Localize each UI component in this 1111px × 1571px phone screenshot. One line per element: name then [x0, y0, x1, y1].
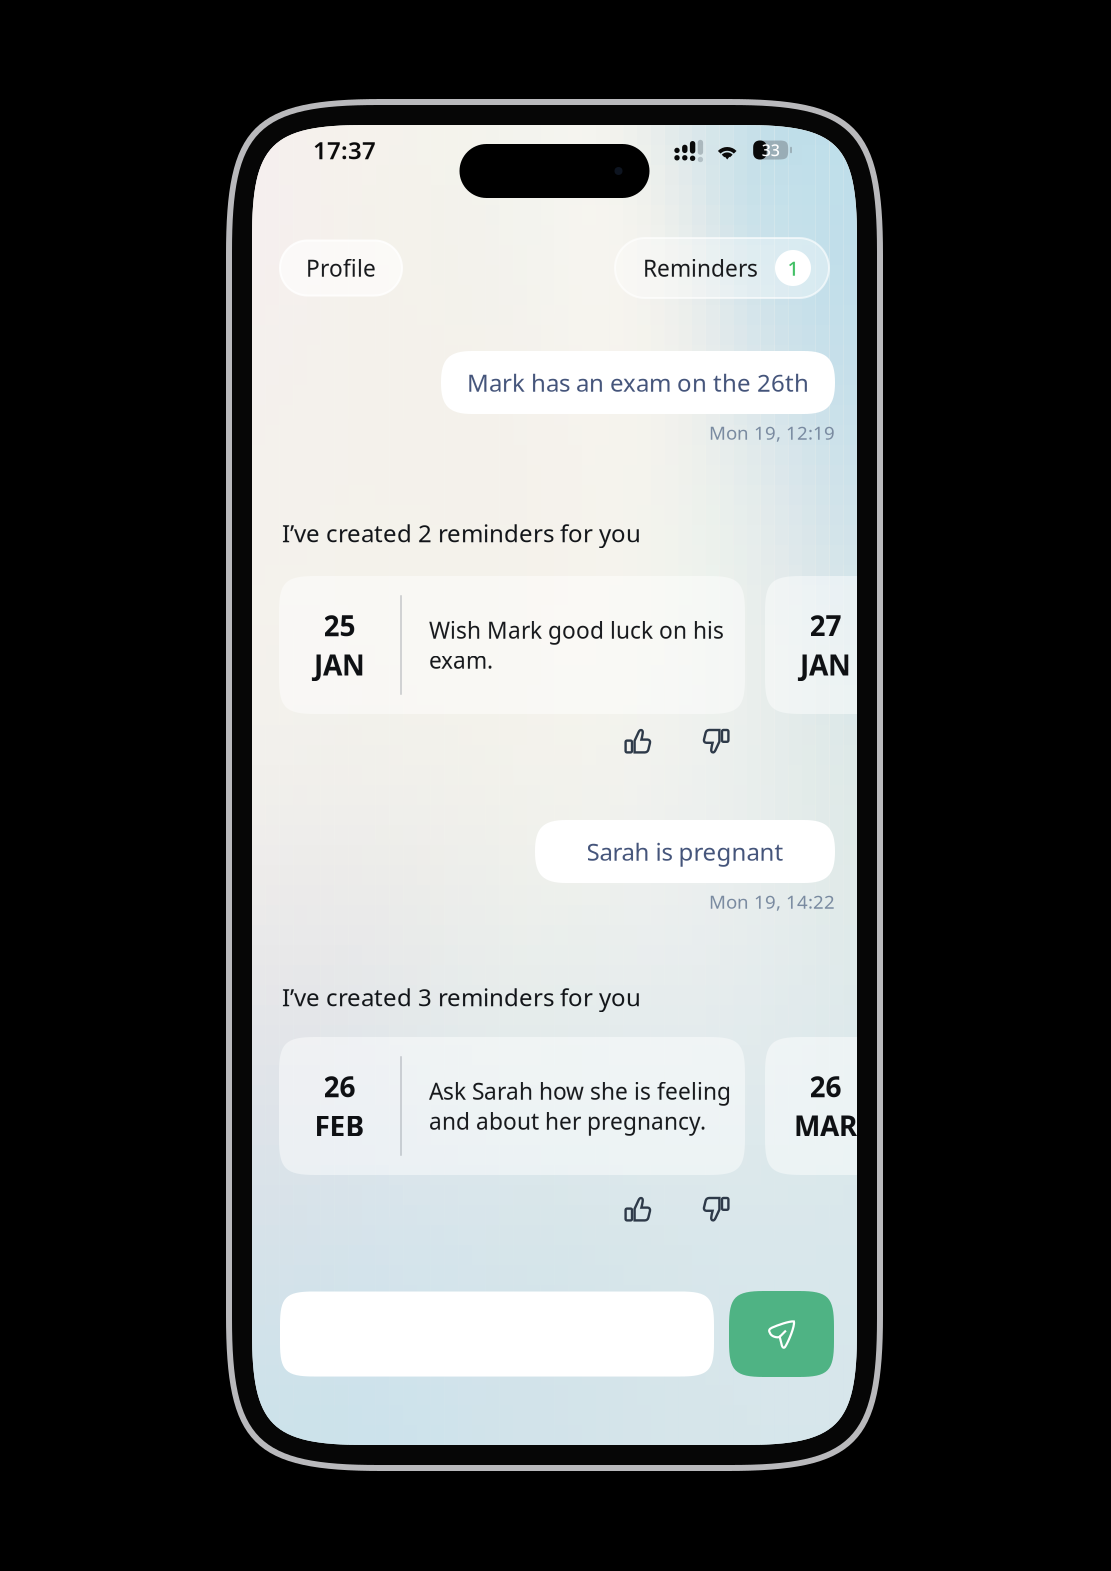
staticText: 1 [787, 255, 798, 281]
staticText: 26 [323, 1068, 355, 1105]
staticText: JAN [314, 646, 365, 683]
button[interactable]: Message [280, 1291, 714, 1376]
staticText: Profile [306, 253, 376, 283]
staticText: Reminders [643, 253, 758, 283]
staticText: Sarah is pregnant [586, 836, 783, 867]
staticText: JAN [800, 646, 851, 683]
button[interactable]: 27 [765, 576, 1111, 714]
button[interactable]: 25 [279, 576, 745, 714]
staticText: Mon 19, 12:19 [709, 420, 835, 445]
button[interactable]: 26 [765, 1037, 1111, 1175]
button[interactable]: Helpful [615, 718, 661, 764]
staticText: Mon 19, 14:22 [709, 889, 835, 914]
staticText: 33 [762, 139, 780, 161]
staticText: 17:37 [313, 134, 376, 166]
staticText: Wish Mark good luck on his exam. [429, 615, 724, 675]
staticText: 27 [809, 607, 841, 644]
button[interactable]: 26 [279, 1037, 745, 1175]
button[interactable]: Not helpful [693, 1186, 739, 1232]
staticText: 26 [809, 1068, 841, 1105]
staticText: I’ve created 2 reminders for you [282, 517, 641, 549]
staticText: MAR [794, 1107, 857, 1144]
staticText: FEB [314, 1107, 364, 1144]
button[interactable]: Not helpful [693, 718, 739, 764]
button[interactable]: Helpful [615, 1186, 661, 1232]
button[interactable]: Send [729, 1291, 834, 1377]
button[interactable]: Profile [280, 240, 402, 295]
staticText: 25 [323, 607, 355, 644]
staticText: I’ve created 3 reminders for you [282, 981, 641, 1013]
button[interactable]: Reminders [615, 238, 829, 298]
staticText: Mark has an exam on the 26th [467, 367, 809, 398]
staticText: Ask Sarah how she is feeling and about h… [429, 1076, 731, 1136]
